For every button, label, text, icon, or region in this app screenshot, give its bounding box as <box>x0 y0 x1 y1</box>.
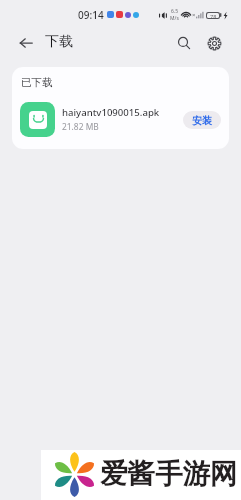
staticText: × <box>192 11 196 19</box>
button[interactable]: Settings <box>201 30 227 56</box>
staticText: 爱酱手游网 <box>100 457 238 492</box>
staticText: 已下载 <box>21 76 53 89</box>
staticText: 21.82 MB <box>62 121 99 132</box>
staticText: 09:14 <box>78 8 104 22</box>
staticText: 下载 <box>45 33 73 51</box>
staticText: 安装 <box>192 114 212 127</box>
staticText: haiyantv1090015.apk <box>62 106 160 119</box>
staticText: 78 <box>210 13 217 18</box>
staticText: 6.5 <box>171 8 179 15</box>
button[interactable]: 安装 <box>183 111 221 129</box>
staticText: M/s <box>170 15 179 22</box>
button[interactable]: Search <box>171 30 197 56</box>
button[interactable]: Back <box>13 30 39 56</box>
